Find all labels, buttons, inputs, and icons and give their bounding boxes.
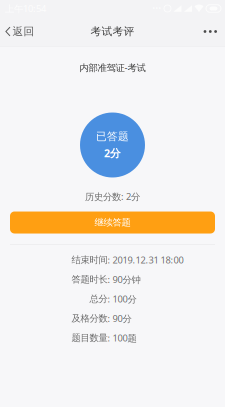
staticText: 2019.12.31 18:00: [112, 254, 183, 266]
staticText: 考试考评: [90, 25, 134, 38]
staticText: 90分: [112, 312, 131, 325]
staticText: 继续答题: [94, 217, 130, 228]
staticText: 结束时间: [71, 254, 107, 266]
staticText: :: [107, 254, 112, 266]
staticText: :: [107, 273, 112, 286]
staticText: 90分钟: [112, 273, 140, 286]
staticText: 100题: [112, 332, 136, 344]
button[interactable]: More options: [196, 17, 225, 46]
staticText: 历史分数: 2分: [85, 190, 140, 203]
staticText: :: [107, 293, 112, 305]
staticText: 2分: [104, 146, 121, 160]
button[interactable]: 返回: [0, 17, 39, 46]
staticText: 题目数量: [71, 332, 107, 344]
staticText: 返回: [12, 25, 34, 38]
button[interactable]: 继续答题: [10, 211, 215, 233]
staticText: 内部准驾证-考试: [79, 61, 145, 74]
staticText: 已答题: [96, 130, 129, 143]
staticText: :: [107, 312, 112, 325]
staticText: 总分: [89, 293, 107, 305]
staticText: 答题时长: [71, 274, 107, 285]
staticText: :: [107, 332, 112, 344]
staticText: 及格分数: [71, 313, 107, 324]
staticText: 100分: [112, 293, 136, 305]
